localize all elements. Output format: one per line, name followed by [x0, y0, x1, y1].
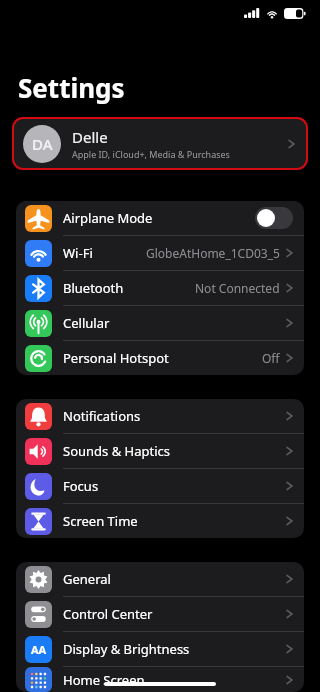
button[interactable]: Control Center: [16, 597, 304, 632]
button[interactable]: General: [16, 562, 304, 597]
staticText: AA: [31, 642, 47, 657]
other: Battery: [284, 8, 306, 19]
button[interactable]: Notifications: [16, 399, 304, 434]
button[interactable]: Screen Time: [16, 504, 304, 538]
other: Airplane Mode toggle: [255, 207, 293, 229]
button[interactable]: Home Screen: [16, 667, 304, 692]
button[interactable]: Bluetooth: [16, 271, 304, 306]
staticText: Personal Hotspot: [63, 349, 169, 367]
staticText: Settings: [18, 70, 125, 105]
staticText: Not Connected: [195, 280, 280, 296]
staticText: Airplane Mode: [63, 209, 153, 227]
staticText: Off: [262, 350, 280, 366]
staticText: Apple ID, iCloud+, Media & Purchases: [72, 148, 230, 160]
button[interactable]: Wi-Fi: [16, 236, 304, 271]
staticText: Delle: [72, 127, 108, 147]
staticText: GlobeAtHome_1CD03_5: [146, 245, 280, 261]
button[interactable]: Personal Hotspot: [16, 341, 304, 375]
staticText: Screen Time: [63, 512, 138, 530]
staticText: Control Center: [63, 605, 153, 623]
staticText: Display & Brightness: [63, 640, 190, 658]
staticText: Home Screen: [63, 671, 145, 689]
button[interactable]: Cellular: [16, 306, 304, 341]
button[interactable]: Focus: [16, 469, 304, 504]
staticText: Focus: [63, 477, 99, 495]
staticText: Cellular: [63, 314, 110, 332]
button[interactable]: AA: [16, 632, 304, 667]
button[interactable]: DA: [14, 119, 306, 168]
staticText: DA: [32, 134, 53, 154]
button[interactable]: Sounds & Haptics: [16, 434, 304, 469]
staticText: General: [63, 570, 111, 588]
other: Cellular signal: [244, 8, 260, 18]
staticText: Sounds & Haptics: [63, 442, 171, 460]
staticText: Notifications: [63, 407, 141, 425]
other: Wi-Fi: [265, 8, 279, 18]
staticText: Bluetooth: [63, 279, 124, 297]
staticText: Wi-Fi: [63, 244, 93, 262]
button[interactable]: Airplane Mode: [16, 201, 304, 236]
